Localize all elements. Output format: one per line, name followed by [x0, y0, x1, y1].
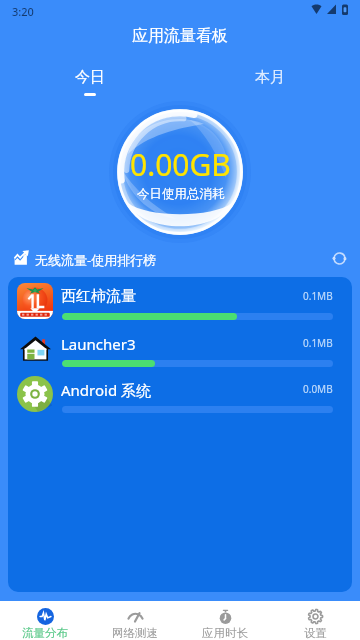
button[interactable]: 今日: [0, 68, 180, 96]
staticText: 0.1MB: [303, 289, 333, 303]
button[interactable]: Android 系统: [8, 370, 352, 417]
staticText: Launcher3: [61, 334, 136, 354]
button[interactable]: 设置: [270, 601, 360, 640]
button[interactable]: Launcher3: [8, 324, 352, 371]
button[interactable]: 本月: [180, 68, 360, 96]
staticText: 0.1MB: [303, 336, 333, 350]
button[interactable]: Refresh: [328, 247, 351, 269]
staticText: Android 系统: [61, 380, 152, 400]
staticText: 今日使用总消耗: [137, 186, 225, 202]
staticText: 本月: [255, 68, 285, 87]
staticText: 0.0MB: [303, 382, 333, 396]
staticText: 西红柿流量: [61, 287, 136, 306]
staticText: 网络测速: [112, 626, 158, 640]
staticText: 今日: [75, 68, 105, 87]
staticText: 无线流量-使用排行榜: [35, 251, 157, 269]
staticText: 0.00GB: [130, 144, 231, 185]
staticText: 流量分布: [22, 626, 68, 640]
button[interactable]: 应用时长: [180, 601, 270, 640]
staticText: 应用时长: [202, 626, 248, 640]
staticText: 应用流量看板: [132, 26, 228, 46]
button[interactable]: 流量分布: [0, 601, 90, 640]
staticText: 3:20: [12, 4, 34, 19]
staticText: 设置: [304, 626, 327, 640]
button[interactable]: 网络测速: [90, 601, 180, 640]
button[interactable]: 西红柿流量: [8, 277, 352, 324]
